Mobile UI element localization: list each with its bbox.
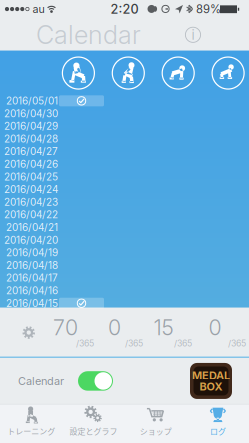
staticText: 2016/04/24 [4,183,58,195]
button[interactable]: Info [179,21,207,49]
staticText: 2016/04/22 [4,209,58,221]
staticText: 2016/04/25 [4,171,58,183]
staticText: ショップ [140,425,172,437]
staticText: 2016/04/30 [4,107,58,120]
staticText: 2016/05/01 [6,95,58,107]
staticText: 2016/04/27 [4,145,58,157]
staticText: /365 [76,338,94,349]
staticText: トレーニング [7,425,55,437]
staticText: 2016/04/26 [4,158,58,170]
staticText: ログ [210,425,226,437]
staticText: /365 [125,338,143,349]
staticText: Calendar [36,19,141,50]
button[interactable]: トレーニング [0,404,62,443]
staticText: 2016/04/29 [4,120,58,132]
staticText: 2016/04/19 [6,247,58,259]
staticText: 89% [196,2,221,16]
staticText: /365 [228,338,246,349]
staticText: 2016/04/23 [4,196,58,208]
staticText: au [32,3,44,15]
staticText: 2016/04/28 [4,133,58,145]
staticText: 2016/04/20 [4,234,58,246]
staticText: 15 [153,315,173,340]
staticText: 70 [53,315,78,340]
staticText: 0 [108,315,121,340]
staticText: 2016/04/21 [6,221,58,233]
staticText: 2016/04/18 [6,259,58,271]
staticText: 2016/04/17 [6,272,58,284]
button[interactable]: ログ [187,404,249,443]
staticText: 0 [208,315,221,340]
staticText: 2016/04/16 [6,285,58,297]
button[interactable]: MEDAL [190,363,232,399]
staticText: Calendar [18,374,64,387]
staticText: BOX [199,380,222,393]
staticText: /365 [174,338,192,349]
button[interactable]: Calendar [78,371,113,391]
button[interactable]: 設定とグラフ [62,404,124,443]
staticText: 設定とグラフ [69,425,117,437]
staticText: MEDAL [192,369,230,382]
staticText: 2:20 [110,1,138,17]
staticText: i [191,27,194,43]
button[interactable]: ショップ [124,404,187,443]
staticText: 2016/04/15 [6,297,58,309]
